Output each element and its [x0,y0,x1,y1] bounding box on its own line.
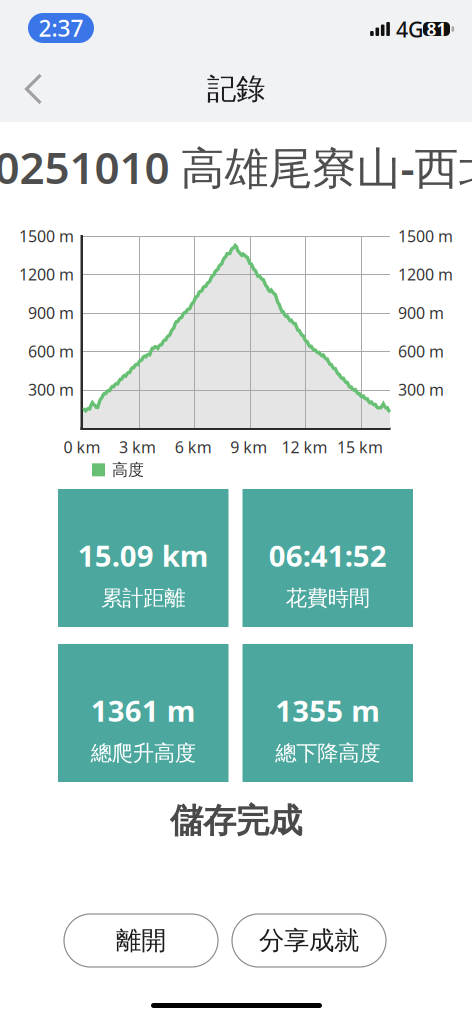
staticText: 6 km [175,436,212,458]
staticText: 600 m [398,341,444,362]
staticText: 4G [396,15,424,43]
staticText: 1200 m [398,264,453,285]
staticText: 20251010 高雄尾寮山-西北峰 [0,138,472,196]
staticText: 15.09 km [78,536,209,575]
staticText: 1500 m [398,225,453,247]
staticText: 1200 m [19,264,74,285]
staticText: 1361 m [91,691,196,730]
staticText: 0 km [63,436,100,458]
staticText: 1500 m [19,225,74,247]
staticText: 900 m [398,302,444,323]
staticText: 15 km [337,436,383,458]
staticText: 2:37 [38,13,83,43]
button[interactable]: 離開 [64,914,218,967]
staticText: 300 m [398,379,444,400]
staticText: 總爬升高度 [91,740,196,766]
staticText: 06:41:52 [269,536,387,575]
button[interactable]: 分享成就 [232,914,386,967]
staticText: 12 km [281,436,327,458]
staticText: 81 [426,17,446,40]
staticText: 儲存完成 [170,800,302,841]
staticText: 高度 [112,460,144,480]
staticText: 花費時間 [286,585,370,611]
staticText: 9 km [230,436,267,458]
staticText: 記錄 [207,71,265,107]
staticText: 總下降高度 [275,740,380,766]
staticText: 3 km [119,436,156,458]
staticText: 900 m [28,302,74,323]
staticText: 離開 [116,925,166,956]
staticText: 累計距離 [101,585,185,611]
button[interactable]: Back [7,61,61,117]
staticText: 分享成就 [259,925,359,956]
staticText: 300 m [28,379,74,400]
staticText: 1355 m [275,691,380,730]
staticText: 600 m [28,341,74,362]
